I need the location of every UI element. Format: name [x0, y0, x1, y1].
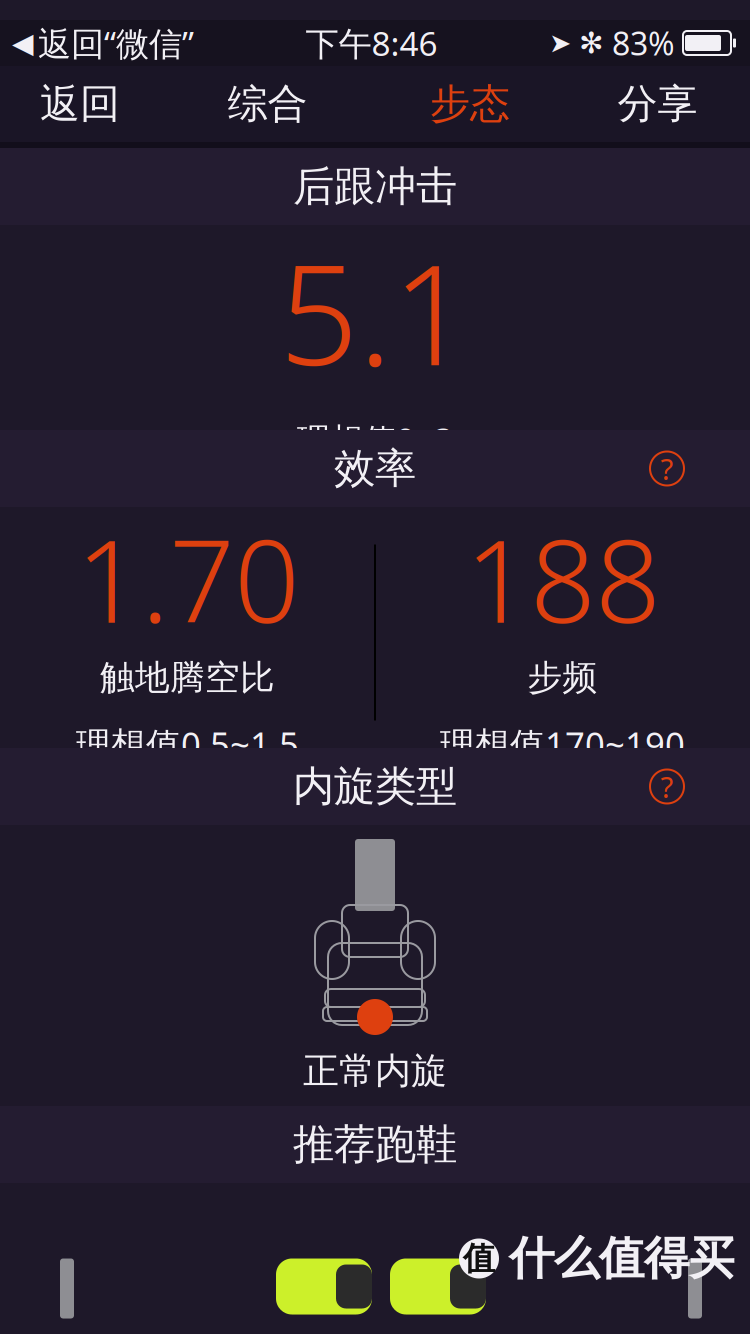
staticText: 值: [463, 1239, 495, 1278]
staticText: 83%: [612, 22, 675, 64]
staticText: 综合: [227, 79, 307, 128]
staticText: 理想值0.5~1.5: [76, 721, 299, 767]
staticText: ➤: [549, 28, 571, 58]
button[interactable]: 帮助: [650, 769, 684, 803]
staticText: ?: [660, 767, 673, 806]
button[interactable]: 综合: [160, 66, 375, 142]
staticText: ✻: [579, 26, 604, 60]
staticText: 理想值0~3: [297, 417, 453, 462]
staticText: 下午8:46: [305, 21, 437, 65]
staticText: 188: [465, 502, 660, 654]
staticText: 什么值得买: [509, 1231, 734, 1286]
staticText: 分享: [617, 79, 697, 128]
staticText: ?: [660, 449, 673, 488]
button[interactable]: ◀: [0, 21, 194, 65]
staticText: 理想值170~190: [440, 721, 685, 767]
staticText: 正常内旋: [303, 1049, 447, 1093]
button[interactable]: 分享: [565, 66, 750, 142]
staticText: 内旋类型: [293, 761, 457, 812]
staticText: 触地腾空比: [100, 656, 275, 699]
staticText: 返回: [40, 79, 120, 128]
staticText: 后跟冲击: [293, 161, 457, 212]
button[interactable]: 帮助: [650, 451, 684, 485]
staticText: 效率: [334, 443, 416, 494]
button[interactable]: 步态: [375, 66, 565, 142]
staticText: ◀: [12, 27, 34, 59]
staticText: 5.1: [279, 219, 471, 403]
staticText: 推荐跑鞋: [293, 1119, 457, 1170]
staticText: 1.70: [76, 502, 299, 654]
staticText: 步频: [527, 656, 597, 699]
staticText: 返回“微信”: [38, 21, 194, 65]
button[interactable]: 返回: [0, 66, 160, 142]
staticText: 步态: [430, 79, 510, 128]
